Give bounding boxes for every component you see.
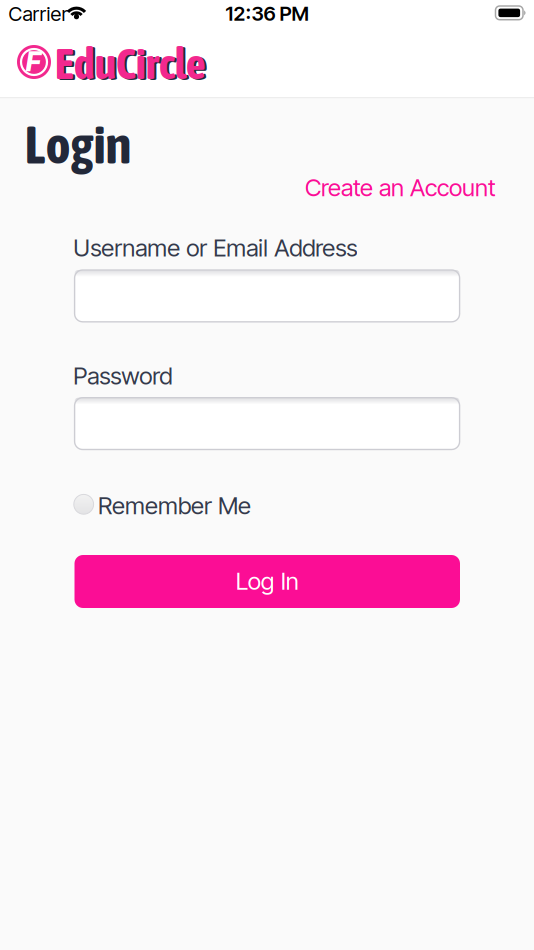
staticText: Log In xyxy=(236,566,299,595)
staticText: 12:36 PM xyxy=(225,1,308,25)
button[interactable]: Log In xyxy=(74,555,460,608)
staticText: EduCircle xyxy=(57,39,208,89)
staticText: Password xyxy=(73,361,172,390)
staticText: Carrier xyxy=(8,1,68,26)
staticText: Create an Account xyxy=(305,173,496,202)
staticText: Login xyxy=(25,114,132,175)
button[interactable]: Create an Account xyxy=(305,173,496,202)
staticText: Remember Me xyxy=(98,491,251,520)
staticText: Username or Email Address xyxy=(73,233,357,262)
staticText: F xyxy=(25,45,41,78)
button[interactable]: Remember Me xyxy=(74,494,244,515)
staticText: EduCircle xyxy=(55,38,206,88)
